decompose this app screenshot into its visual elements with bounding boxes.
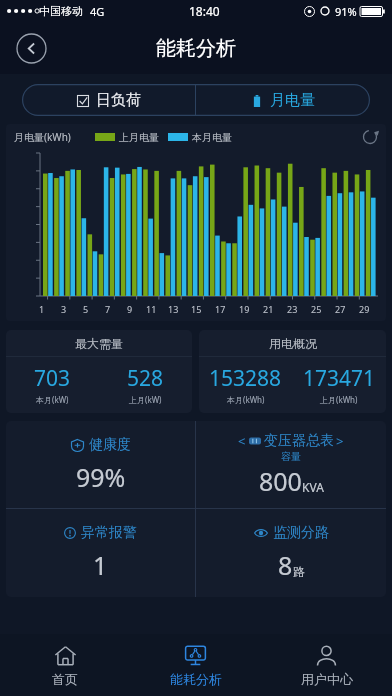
staticText: 7: [105, 303, 111, 315]
staticText: KVA: [302, 479, 324, 495]
staticText: 月电量: [270, 91, 315, 110]
staticText: 变压器总表: [264, 432, 334, 450]
staticText: 18:40: [189, 3, 220, 19]
staticText: 528: [127, 364, 164, 393]
staticText: 703: [34, 364, 71, 393]
staticText: 3: [61, 303, 67, 315]
staticText: 5: [83, 303, 89, 315]
staticText: 13: [168, 303, 179, 315]
staticText: 上月电量: [119, 131, 159, 144]
staticText: 监测分路: [273, 524, 329, 542]
button[interactable]: 用电概况: [199, 330, 386, 413]
staticText: 1: [93, 548, 108, 582]
staticText: 8: [278, 548, 293, 582]
staticText: 上月(kWh): [320, 394, 358, 405]
staticText: 4G: [90, 4, 105, 19]
button[interactable]: 最大需量: [6, 330, 192, 413]
staticText: 173471: [303, 364, 376, 393]
button[interactable]: <: [196, 421, 386, 508]
button[interactable]: 监测分路: [196, 509, 386, 597]
staticText: <: [238, 432, 246, 450]
staticText: 最大需量: [75, 336, 123, 351]
staticText: 健康度: [89, 436, 131, 454]
staticText: 99%: [76, 460, 126, 494]
staticText: 25: [311, 303, 322, 315]
staticText: 首页: [52, 671, 78, 687]
button[interactable]: 异常报警: [6, 509, 195, 597]
staticText: 本月电量: [192, 131, 232, 144]
staticText: 路: [293, 564, 305, 579]
staticText: 用电概况: [269, 336, 317, 351]
staticText: 异常报警: [81, 524, 137, 542]
staticText: 153288: [209, 364, 282, 393]
staticText: 29: [359, 303, 370, 315]
staticText: 27: [335, 303, 346, 315]
staticText: 本月(kWh): [227, 394, 265, 405]
staticText: 19: [239, 303, 250, 315]
staticText: 11: [146, 303, 157, 315]
button[interactable]: 日负荷: [22, 84, 195, 116]
staticText: 17: [215, 303, 226, 315]
staticText: >: [336, 432, 344, 450]
staticText: 本月(kW): [36, 394, 69, 405]
staticText: 21: [263, 303, 274, 315]
staticText: 上月(kW): [129, 394, 162, 405]
button[interactable]: 月电量: [196, 84, 370, 116]
staticText: 能耗分析: [170, 671, 222, 687]
staticText: 能耗分析: [156, 36, 236, 61]
staticText: 800: [259, 464, 302, 498]
staticText: 用户中心: [301, 671, 353, 687]
staticText: 15: [191, 303, 202, 315]
button[interactable]: Back: [16, 33, 47, 64]
staticText: 1: [39, 303, 45, 315]
staticText: 日负荷: [96, 91, 141, 110]
button[interactable]: 能耗分析: [130, 634, 261, 696]
staticText: 容量: [281, 450, 301, 463]
button[interactable]: 用户中心: [261, 634, 392, 696]
button[interactable]: 健康度: [6, 421, 195, 508]
button[interactable]: Refresh: [362, 129, 378, 145]
staticText: 91%: [335, 4, 357, 19]
staticText: 23: [287, 303, 298, 315]
staticText: 月电量(kWh): [14, 130, 71, 144]
staticText: 9: [127, 303, 133, 315]
button[interactable]: 首页: [0, 634, 130, 696]
staticText: 中国移动: [39, 4, 83, 18]
